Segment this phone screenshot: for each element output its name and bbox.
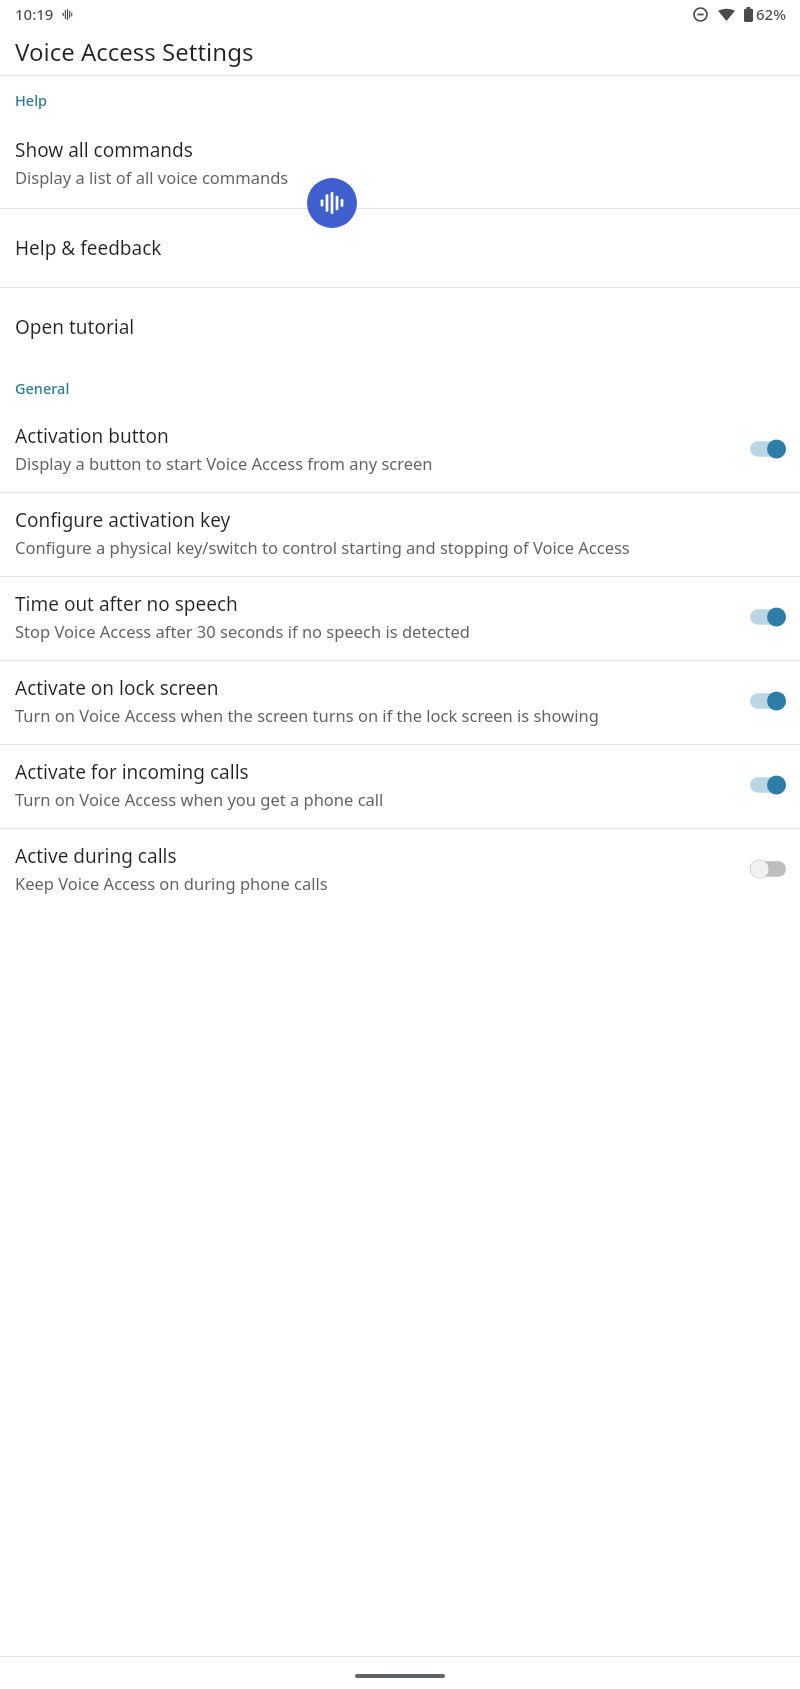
staticText: General	[15, 378, 70, 398]
button[interactable]: Open tutorial	[0, 288, 800, 364]
staticText: Display a list of all voice commands	[15, 166, 289, 188]
button[interactable]: Active during calls	[0, 829, 800, 912]
staticText: Voice Access Settings	[15, 35, 254, 68]
button[interactable]: On	[750, 773, 786, 797]
button[interactable]: Off	[750, 857, 786, 881]
button[interactable]: Activate for incoming calls	[0, 745, 800, 828]
button[interactable]: Activation button	[0, 411, 800, 492]
button[interactable]: Show all commands	[0, 123, 800, 208]
button[interactable]: Configure activation key	[0, 493, 800, 576]
staticText: 62%	[756, 4, 786, 24]
staticText: Turn on Voice Access when the screen tur…	[15, 704, 599, 726]
staticText: Activate for incoming calls	[15, 759, 249, 785]
staticText: Active during calls	[15, 843, 177, 869]
staticText: Keep Voice Access on during phone calls	[15, 872, 328, 894]
staticText: Time out after no speech	[15, 591, 238, 617]
staticText: 10:19	[15, 4, 54, 24]
staticText: Activation button	[15, 423, 169, 449]
staticText: Configure activation key	[15, 507, 231, 533]
button[interactable]: Start Voice Access	[307, 178, 357, 228]
staticText: Open tutorial	[15, 314, 135, 340]
staticText: Activate on lock screen	[15, 675, 219, 701]
staticText: Help	[15, 90, 48, 110]
button[interactable]: Activate on lock screen	[0, 661, 800, 744]
button[interactable]: Time out after no speech	[0, 577, 800, 660]
button[interactable]: On	[750, 605, 786, 629]
button[interactable]: On	[750, 689, 786, 713]
button[interactable]: On	[750, 437, 786, 461]
staticText: Configure a physical key/switch to contr…	[15, 536, 630, 558]
staticText: Stop Voice Access after 30 seconds if no…	[15, 620, 470, 642]
button[interactable]: Help & feedback	[0, 209, 800, 287]
staticText: Show all commands	[15, 137, 193, 163]
staticText: Turn on Voice Access when you get a phon…	[15, 788, 384, 810]
staticText: Help & feedback	[15, 235, 162, 261]
staticText: Display a button to start Voice Access f…	[15, 452, 433, 474]
